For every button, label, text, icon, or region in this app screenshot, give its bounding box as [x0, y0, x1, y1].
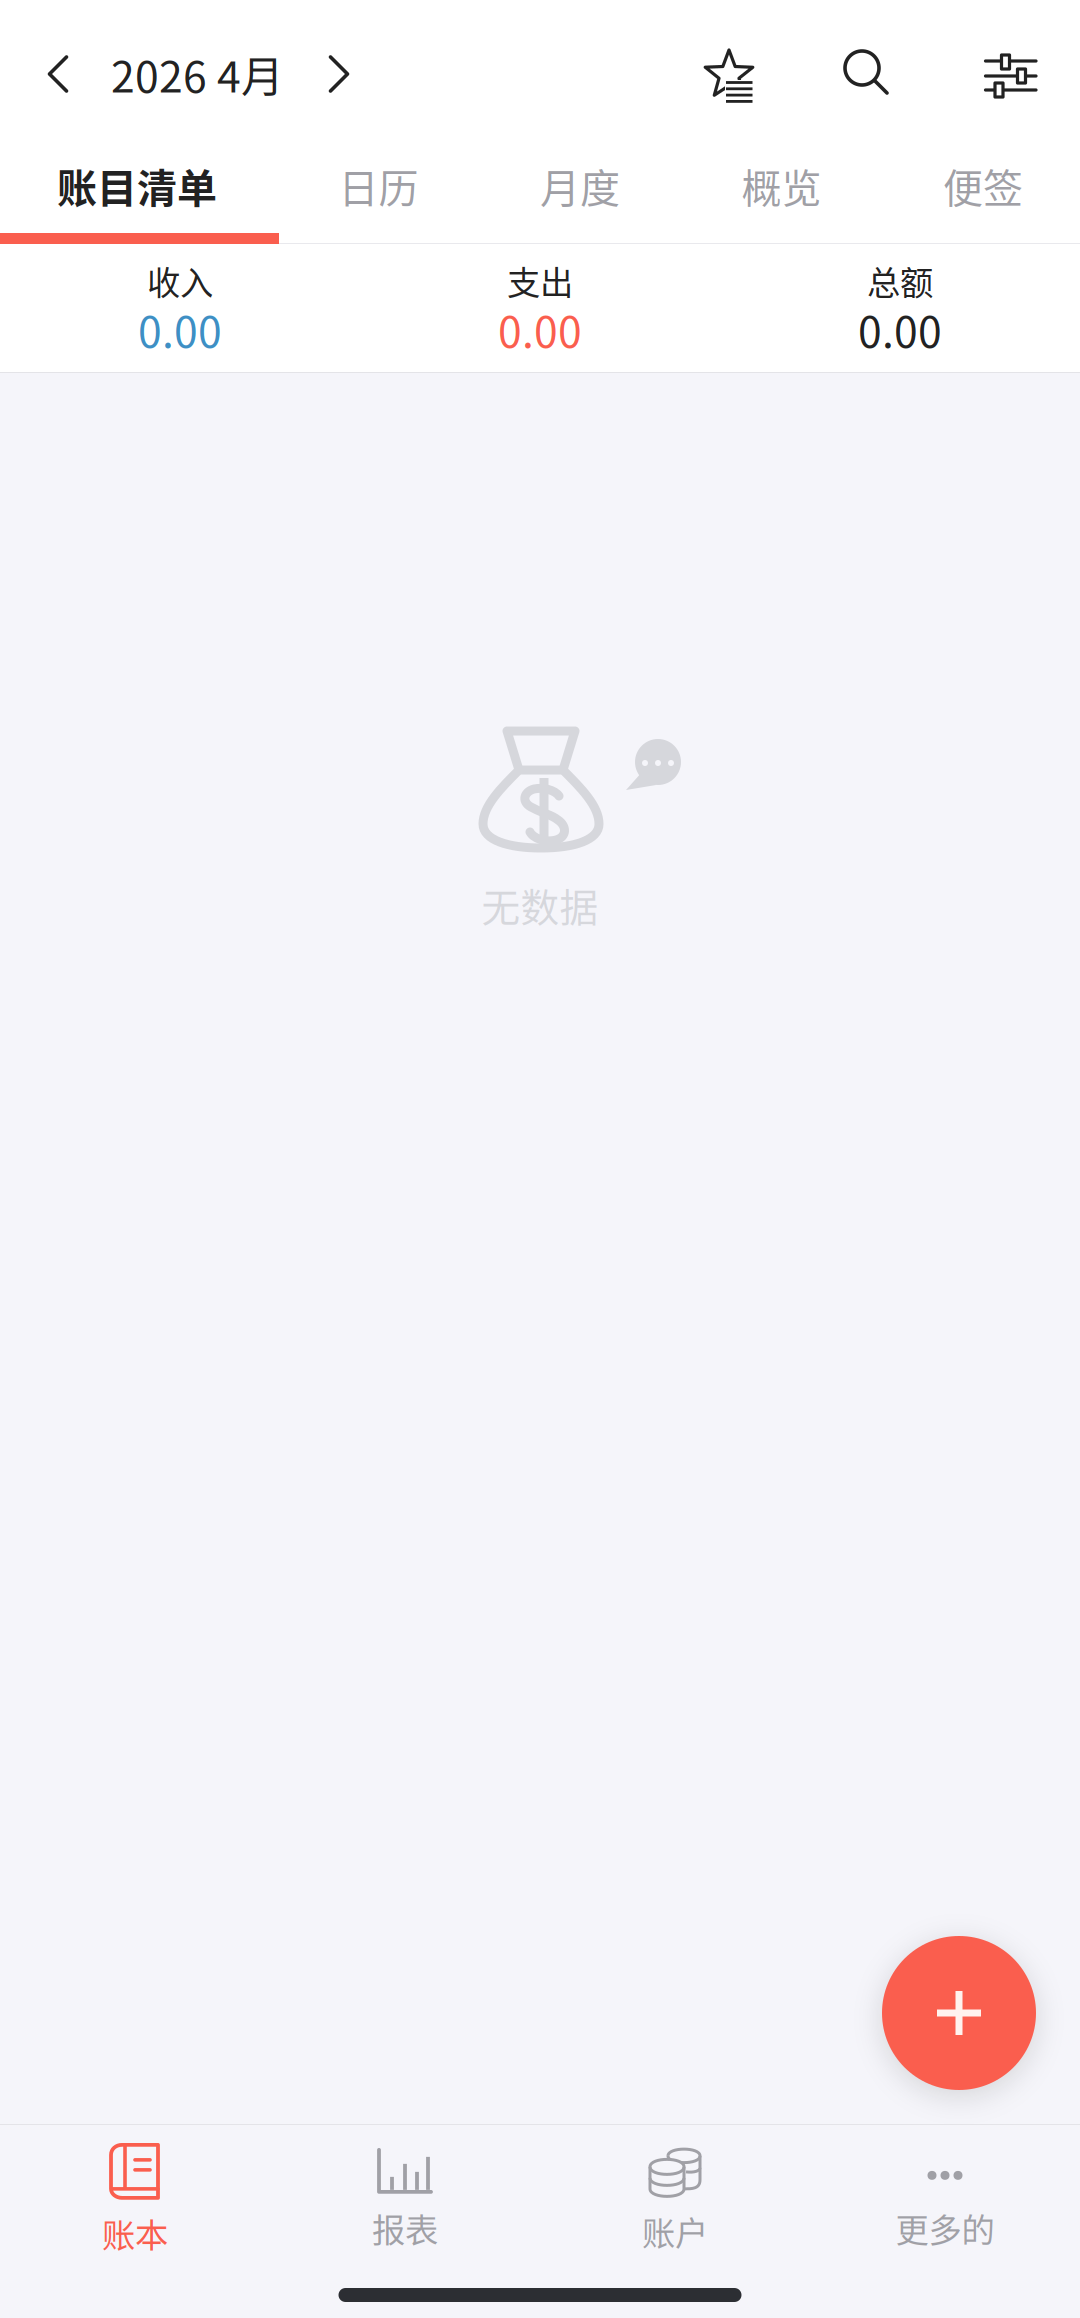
- button[interactable]: 月度: [540, 156, 620, 214]
- button[interactable]: 便签: [943, 156, 1023, 214]
- button[interactable]: 账本: [0, 2126, 270, 2256]
- staticText: 无数据: [481, 877, 598, 933]
- staticText: 便签: [943, 156, 1023, 214]
- staticText: 总额: [867, 256, 933, 305]
- staticText: 2026 4月: [111, 43, 284, 105]
- button[interactable]: 账目清单: [57, 156, 217, 214]
- button[interactable]: 日历: [338, 156, 418, 214]
- button[interactable]: 报表: [270, 2126, 540, 2256]
- staticText: 收入: [147, 256, 213, 305]
- button[interactable]: 更多的: [810, 2126, 1080, 2256]
- button[interactable]: Filter: [963, 19, 1059, 129]
- staticText: 0.00: [498, 298, 582, 360]
- button[interactable]: 概览: [741, 156, 821, 214]
- button[interactable]: Add record: [882, 1936, 1036, 2090]
- staticText: 0.00: [858, 298, 942, 360]
- staticText: 账本: [102, 2209, 168, 2257]
- staticText: 0.00: [138, 298, 222, 360]
- staticText: 账户: [642, 2207, 708, 2255]
- staticText: 支出: [507, 256, 573, 305]
- staticText: 报表: [372, 2204, 438, 2252]
- staticText: 账目清单: [57, 156, 217, 214]
- staticText: 日历: [338, 156, 418, 214]
- button[interactable]: Next month: [305, 19, 373, 129]
- button[interactable]: Search: [819, 19, 915, 129]
- staticText: 概览: [741, 156, 821, 214]
- button[interactable]: Previous month: [24, 19, 92, 129]
- button[interactable]: Favorites: [681, 19, 777, 129]
- staticText: 更多的: [895, 2204, 994, 2252]
- staticText: 月度: [540, 156, 620, 214]
- button[interactable]: 账户: [540, 2126, 810, 2256]
